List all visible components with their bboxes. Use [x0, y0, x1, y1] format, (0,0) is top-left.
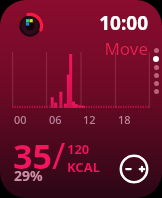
staticText: 18: [118, 112, 131, 126]
staticText: 35: [13, 133, 52, 179]
button[interactable]: Activity complication: [16, 12, 44, 40]
staticText: KCAL: [67, 158, 100, 176]
staticText: /: [52, 131, 66, 180]
staticText: 120: [67, 140, 90, 158]
staticText: 10:00: [99, 10, 148, 36]
staticText: 29%: [14, 166, 43, 185]
staticText: 06: [49, 112, 62, 126]
button[interactable]: 35: [13, 130, 99, 179]
staticText: Move: [104, 37, 148, 60]
staticText: 12: [83, 112, 96, 126]
button[interactable]: Adjust goal: [119, 154, 149, 184]
staticText: 00: [14, 112, 27, 126]
